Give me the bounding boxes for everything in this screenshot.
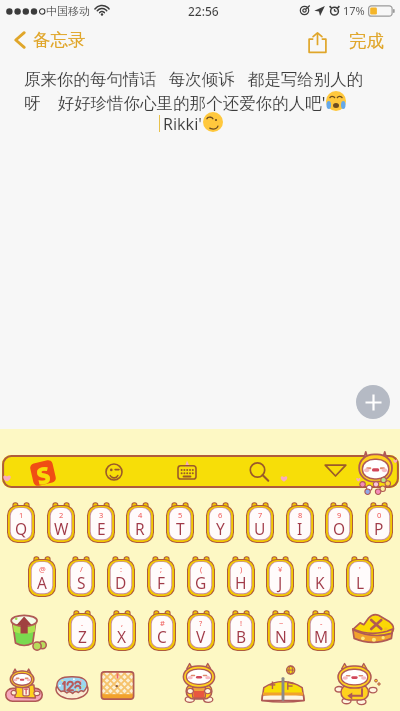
button[interactable]: # [148, 608, 176, 651]
staticText: Z [78, 626, 87, 647]
button[interactable]: Share [300, 26, 334, 58]
button[interactable]: 备忘录 [8, 25, 94, 55]
button[interactable]: . [68, 608, 96, 651]
button[interactable]: Language [259, 664, 307, 702]
button[interactable]: 3 [87, 500, 115, 543]
button[interactable]: Add attachment [356, 385, 390, 419]
button[interactable]: Space [100, 670, 135, 701]
staticText: 原来你的每句情话 每次倾诉 都是写给别人的 [24, 67, 364, 90]
staticText: : [120, 564, 123, 574]
button[interactable]: Delete [350, 611, 396, 647]
staticText: D [115, 572, 127, 593]
button[interactable]: @ [28, 554, 56, 597]
staticText: 备忘录 [33, 29, 86, 51]
staticText: / [80, 564, 83, 574]
button[interactable]: Hide keyboard [324, 464, 347, 477]
staticText: I [297, 518, 303, 539]
staticText: L [356, 572, 365, 593]
staticText: 0 [377, 510, 382, 520]
staticText: 6 [218, 510, 223, 520]
staticText: ~ [279, 618, 284, 628]
button[interactable]: Shift [9, 611, 45, 650]
staticText: 7 [258, 510, 263, 520]
button[interactable]: Search [248, 461, 269, 482]
staticText: T [176, 518, 185, 539]
button[interactable]: : [107, 554, 135, 597]
button[interactable]: - [307, 608, 335, 651]
staticText: Y [216, 518, 225, 539]
staticText: R [135, 518, 145, 539]
button[interactable]: 完成 [341, 26, 391, 56]
staticText: 22:56 [188, 3, 219, 19]
button[interactable]: 2 [47, 500, 75, 543]
button[interactable]: 1 [7, 500, 35, 543]
staticText: ' [359, 564, 361, 574]
button[interactable]: Sogou input menu [30, 460, 56, 486]
button[interactable]: Emoji [105, 463, 123, 481]
button[interactable]: Numbers [56, 676, 88, 699]
staticText: G [195, 572, 207, 593]
staticText: B [236, 626, 247, 647]
staticText: C [157, 626, 167, 647]
button[interactable]: ¥ [266, 554, 294, 597]
staticText: ! [240, 618, 243, 628]
button[interactable]: 5 [166, 500, 194, 543]
staticText: 完成 [349, 30, 384, 52]
staticText: " [318, 564, 322, 574]
button[interactable]: 9 [325, 500, 353, 543]
button[interactable] [2, 455, 399, 488]
staticText: V [196, 626, 206, 647]
staticText: ) [240, 564, 243, 574]
button[interactable]: ? [187, 608, 215, 651]
staticText: ¥ [278, 564, 283, 574]
staticText: 3 [99, 510, 104, 520]
staticText: @ [39, 564, 46, 574]
button[interactable]: 0 [365, 500, 393, 543]
staticText: M [314, 626, 329, 647]
button[interactable]: 4 [126, 500, 154, 543]
staticText: 1 [19, 510, 24, 520]
staticText: - [320, 618, 323, 628]
staticText: 中国移动 [46, 4, 90, 18]
button[interactable]: , [108, 608, 136, 651]
staticText: # [160, 618, 165, 628]
button[interactable]: Voice input [176, 663, 222, 704]
button[interactable]: ( [187, 554, 215, 597]
staticText: N [275, 626, 287, 647]
staticText: . [81, 618, 84, 628]
staticText: 呀 好好珍惜你心里的那个还爱你的人吧' [24, 91, 326, 114]
staticText: S [33, 458, 52, 486]
button[interactable]: " [306, 554, 334, 597]
staticText: Q [15, 518, 28, 539]
staticText: ; [160, 564, 163, 574]
button[interactable]: ! [227, 608, 255, 651]
button[interactable]: Enter [331, 663, 381, 705]
button[interactable]: ) [227, 554, 255, 597]
staticText: Rikki' [163, 113, 202, 135]
button[interactable]: ' [346, 554, 374, 597]
staticText: O [333, 518, 346, 539]
button[interactable]: 7 [246, 500, 274, 543]
staticText: 17% [343, 3, 365, 18]
button[interactable]: 6 [206, 500, 234, 543]
staticText: P [374, 518, 384, 539]
button[interactable]: Theme [355, 450, 397, 494]
staticText: E [97, 518, 106, 539]
button[interactable]: / [67, 554, 95, 597]
button[interactable]: 8 [286, 500, 314, 543]
staticText: A [37, 572, 47, 593]
staticText: ( [200, 564, 203, 574]
staticText: 8 [298, 510, 303, 520]
staticText: F [157, 572, 166, 593]
staticText: S [77, 572, 86, 593]
button[interactable]: ; [147, 554, 175, 597]
staticText: U [254, 518, 266, 539]
staticText: H [235, 572, 247, 593]
staticText: 4 [138, 510, 143, 520]
staticText: X [117, 626, 127, 647]
staticText: 9 [337, 510, 342, 520]
button[interactable]: ~ [267, 608, 295, 651]
staticText: 2 [59, 510, 64, 520]
button[interactable]: Symbols [5, 668, 43, 702]
button[interactable]: Keyboard layout [177, 464, 197, 480]
